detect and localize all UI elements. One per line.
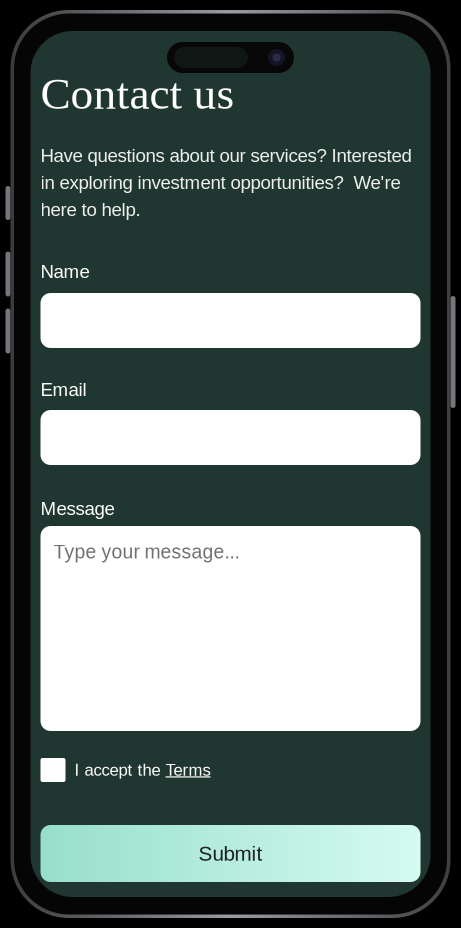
staticText: Have questions about our services? Inter… bbox=[40, 145, 411, 166]
button[interactable]: Submit bbox=[40, 825, 420, 882]
staticText: Submit bbox=[198, 842, 262, 865]
staticText: Message bbox=[40, 498, 114, 519]
staticText: Terms bbox=[165, 761, 210, 779]
staticText: in exploring investment opportunities? W… bbox=[40, 172, 400, 193]
staticText: Type your message... bbox=[53, 541, 239, 563]
staticText: Contact us bbox=[40, 68, 234, 119]
staticText: I accept the bbox=[74, 761, 165, 779]
staticText: Email bbox=[40, 379, 86, 400]
staticText: here to help. bbox=[40, 199, 140, 220]
button[interactable]: I accept the bbox=[40, 757, 420, 783]
staticText: Name bbox=[40, 261, 89, 282]
